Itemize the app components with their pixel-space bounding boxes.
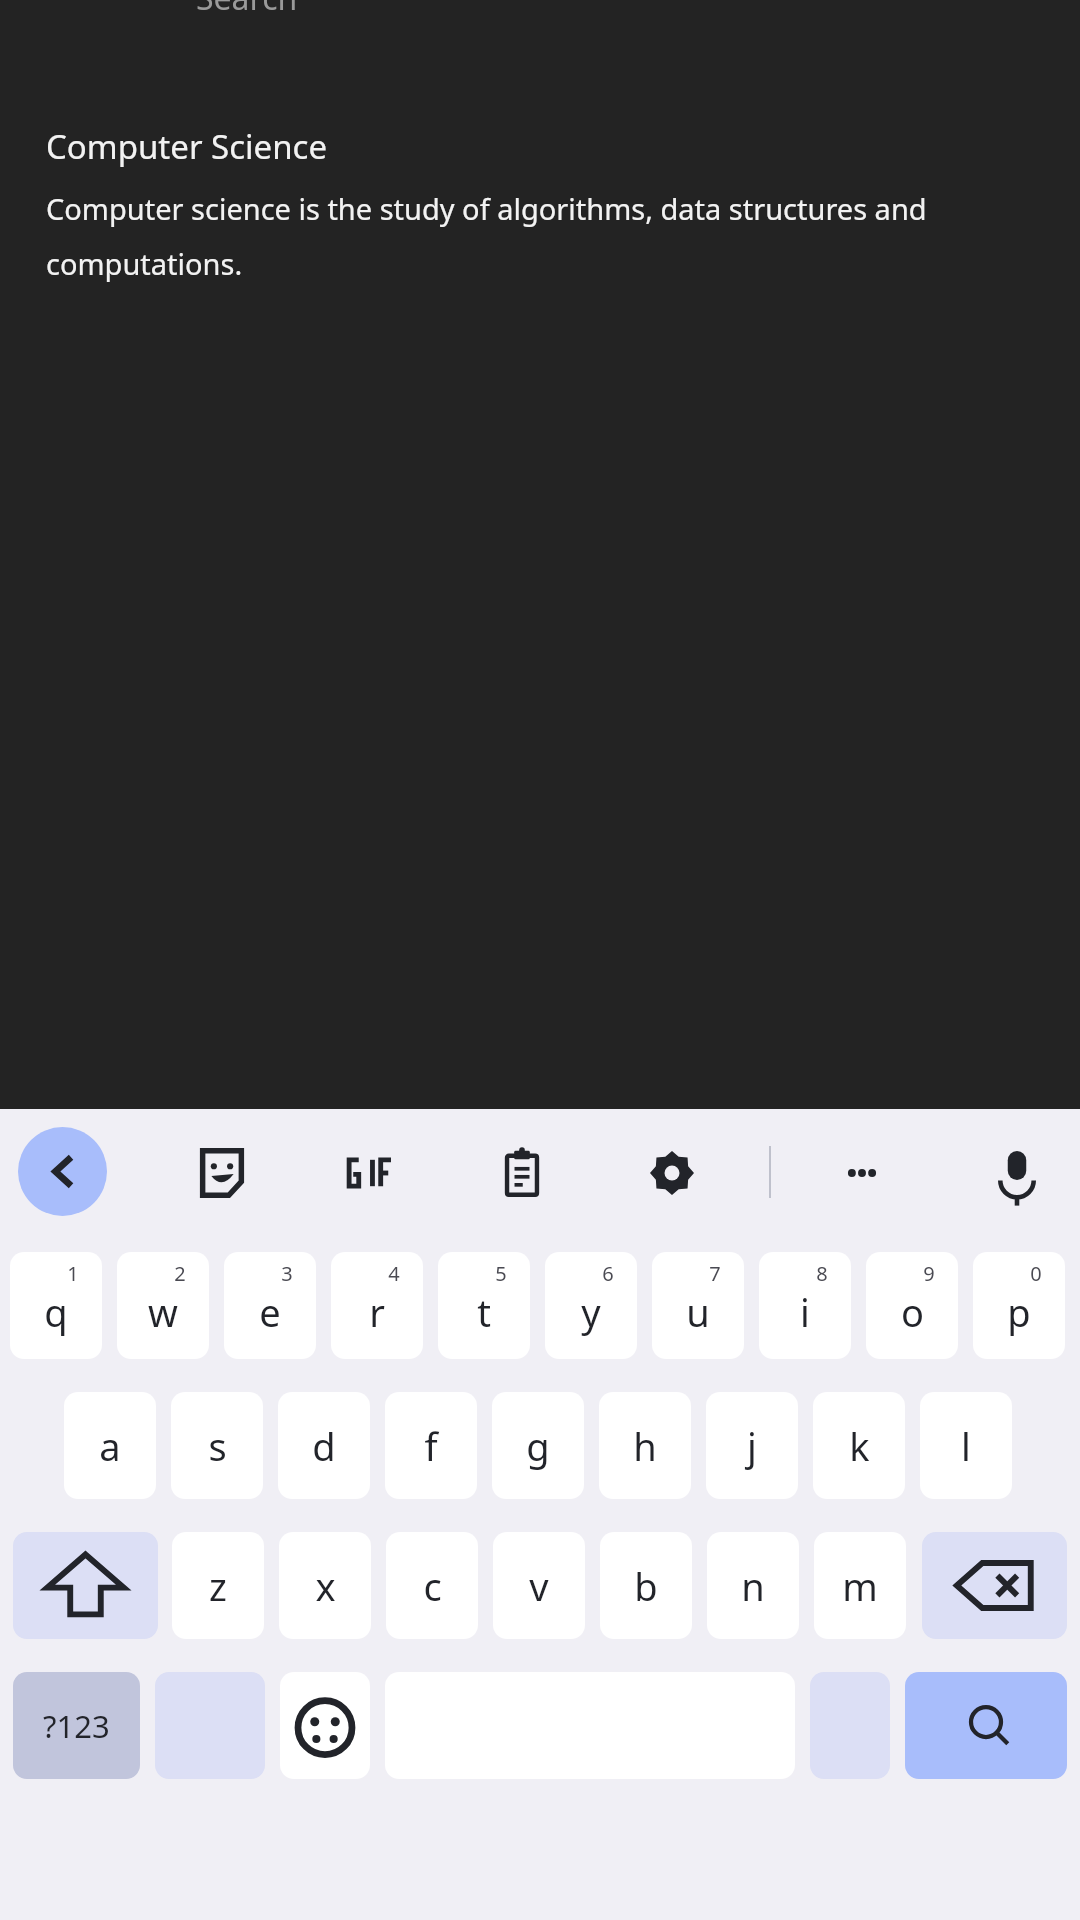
button[interactable]: Backspace bbox=[922, 1532, 1067, 1639]
staticText: q bbox=[44, 1286, 68, 1338]
button[interactable]: z bbox=[172, 1532, 264, 1639]
staticText: h bbox=[633, 1420, 657, 1472]
staticText: w bbox=[148, 1286, 178, 1338]
staticText: v bbox=[529, 1560, 549, 1612]
staticText: g bbox=[526, 1420, 550, 1472]
button[interactable]: d bbox=[278, 1392, 370, 1499]
staticText: b bbox=[634, 1560, 658, 1612]
button[interactable]: 1 bbox=[10, 1252, 102, 1359]
staticText: c bbox=[423, 1560, 442, 1612]
staticText: k bbox=[849, 1420, 870, 1472]
button[interactable]: a bbox=[64, 1392, 156, 1499]
staticText: r bbox=[369, 1286, 385, 1338]
button[interactable]: ?123 bbox=[13, 1672, 140, 1779]
button[interactable]: b bbox=[600, 1532, 692, 1639]
button[interactable]: Collapse toolbar bbox=[18, 1127, 107, 1216]
staticText: 6 bbox=[602, 1260, 614, 1287]
staticText: e bbox=[259, 1286, 281, 1338]
button[interactable]: s bbox=[171, 1392, 263, 1499]
button[interactable]: Settings bbox=[628, 1129, 716, 1217]
staticText: z bbox=[209, 1560, 227, 1612]
button[interactable]: 0 bbox=[973, 1252, 1065, 1359]
button[interactable]: 9 bbox=[866, 1252, 958, 1359]
button[interactable]: n bbox=[707, 1532, 799, 1639]
staticText: j bbox=[747, 1420, 757, 1472]
staticText: 1 bbox=[67, 1260, 79, 1287]
button[interactable]: v bbox=[493, 1532, 585, 1639]
button[interactable]: 2 bbox=[117, 1252, 209, 1359]
button[interactable]: f bbox=[385, 1392, 477, 1499]
button[interactable]: More options bbox=[818, 1129, 906, 1217]
button[interactable]: x bbox=[279, 1532, 371, 1639]
button[interactable]: 4 bbox=[331, 1252, 423, 1359]
staticText: 4 bbox=[388, 1260, 400, 1287]
staticText: 2 bbox=[174, 1260, 186, 1287]
staticText: a bbox=[99, 1420, 121, 1472]
staticText: f bbox=[424, 1420, 438, 1472]
staticText: x bbox=[315, 1560, 336, 1612]
button[interactable]: Shift bbox=[13, 1532, 158, 1639]
staticText: 5 bbox=[495, 1260, 507, 1287]
staticText: m bbox=[842, 1560, 878, 1612]
staticText: 3 bbox=[281, 1260, 293, 1287]
button[interactable]: l bbox=[920, 1392, 1012, 1499]
button[interactable]: Clipboard bbox=[478, 1129, 566, 1217]
staticText: t bbox=[477, 1286, 491, 1338]
button[interactable]: 3 bbox=[224, 1252, 316, 1359]
staticText: o bbox=[901, 1286, 924, 1338]
button[interactable]: g bbox=[492, 1392, 584, 1499]
button[interactable]: Stickers bbox=[178, 1129, 266, 1217]
staticText: 9 bbox=[923, 1260, 935, 1287]
button[interactable]: 7 bbox=[652, 1252, 744, 1359]
staticText: d bbox=[312, 1420, 336, 1472]
staticText: 7 bbox=[709, 1260, 721, 1287]
staticText: i bbox=[800, 1286, 810, 1338]
staticText: l bbox=[961, 1420, 971, 1472]
staticText: Computer Science bbox=[46, 124, 328, 169]
staticText: y bbox=[581, 1286, 601, 1338]
staticText: 0 bbox=[1030, 1260, 1042, 1287]
button[interactable]: h bbox=[599, 1392, 691, 1499]
button[interactable]: Voice input bbox=[973, 1129, 1061, 1217]
button[interactable]: k bbox=[813, 1392, 905, 1499]
button[interactable]: c bbox=[386, 1532, 478, 1639]
staticText: 8 bbox=[816, 1260, 828, 1287]
button[interactable]: m bbox=[814, 1532, 906, 1639]
button[interactable]: 6 bbox=[545, 1252, 637, 1359]
button[interactable]: Search bbox=[905, 1672, 1067, 1779]
staticText: Computer science is the study of algorit… bbox=[46, 189, 1040, 284]
staticText: p bbox=[1007, 1286, 1031, 1338]
staticText: Search bbox=[196, 0, 298, 14]
button[interactable]: GIF bbox=[328, 1129, 416, 1217]
button[interactable]: j bbox=[706, 1392, 798, 1499]
button[interactable]: 8 bbox=[759, 1252, 851, 1359]
staticText: s bbox=[208, 1420, 227, 1472]
staticText: n bbox=[741, 1560, 765, 1612]
button[interactable]: Emoji bbox=[280, 1672, 370, 1779]
button[interactable]: 5 bbox=[438, 1252, 530, 1359]
staticText: ?123 bbox=[43, 1705, 110, 1747]
staticText: u bbox=[686, 1286, 710, 1338]
